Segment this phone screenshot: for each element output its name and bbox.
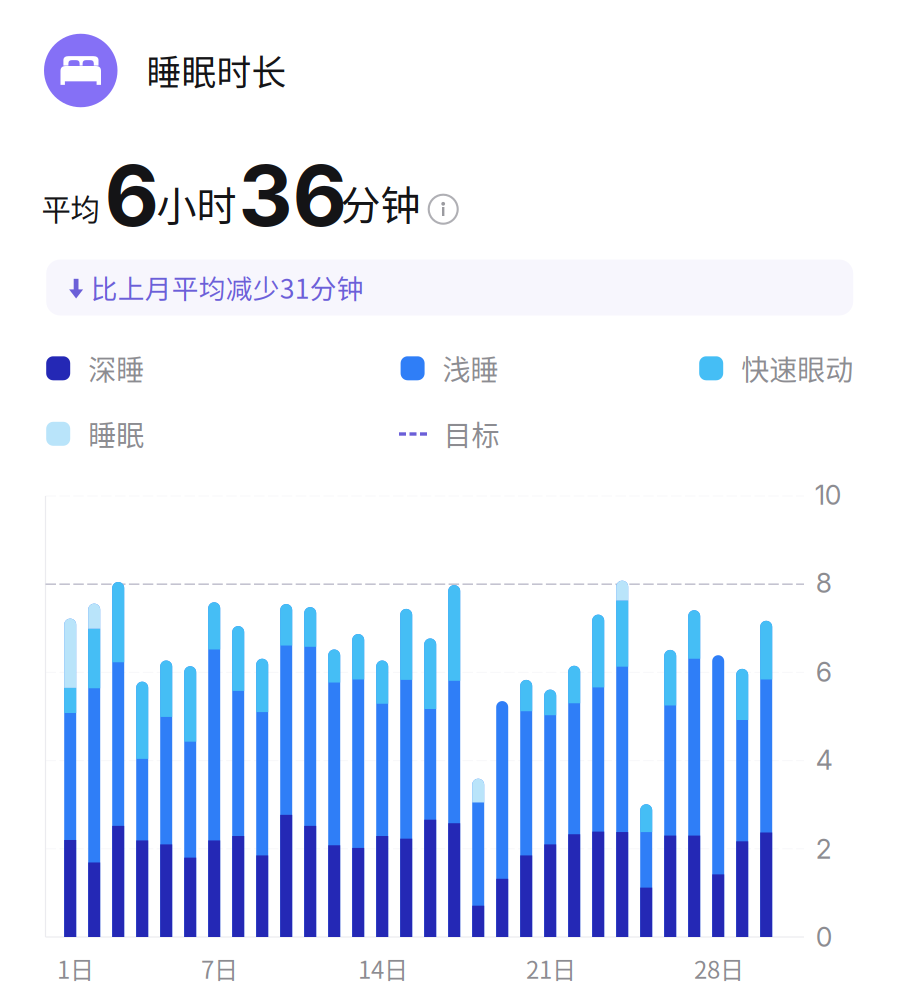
staticText: 21日 xyxy=(526,951,576,986)
staticText: 10 xyxy=(815,479,842,511)
staticText: 7日 xyxy=(201,951,238,986)
staticText: 分钟 xyxy=(340,173,420,231)
staticText: 6 xyxy=(816,656,832,688)
staticText: 0 xyxy=(816,921,833,953)
staticText: 浅睡 xyxy=(443,348,499,388)
staticText: 1日 xyxy=(57,951,94,986)
button[interactable]: 深睡 xyxy=(46,351,246,385)
staticText: 2 xyxy=(816,833,832,865)
staticText: 14日 xyxy=(358,951,408,986)
staticText: 8 xyxy=(816,567,832,599)
staticText: 目标 xyxy=(443,413,499,454)
staticText: 36 xyxy=(238,144,347,246)
button[interactable]: 说明 xyxy=(427,193,459,225)
staticText: 睡眠 xyxy=(88,413,144,454)
staticText: 4 xyxy=(816,744,833,776)
staticText: 睡眠时长 xyxy=(146,45,286,96)
button[interactable]: 比上月平均减少31分钟 xyxy=(46,259,853,315)
button[interactable]: 目标 xyxy=(399,417,599,451)
button[interactable]: 快速眼动 xyxy=(699,351,899,385)
staticText: 6 xyxy=(104,144,159,246)
button[interactable]: 浅睡 xyxy=(401,351,601,385)
staticText: 小时 xyxy=(156,174,236,232)
button[interactable]: 睡眠时长 xyxy=(44,32,364,108)
button[interactable]: 睡眠 xyxy=(46,417,246,451)
staticText: 平均 xyxy=(41,186,99,229)
staticText: 28日 xyxy=(694,951,744,986)
staticText: 深睡 xyxy=(88,348,144,388)
staticText: 比上月平均减少31分钟 xyxy=(91,268,364,306)
staticText: 快速眼动 xyxy=(741,348,853,388)
